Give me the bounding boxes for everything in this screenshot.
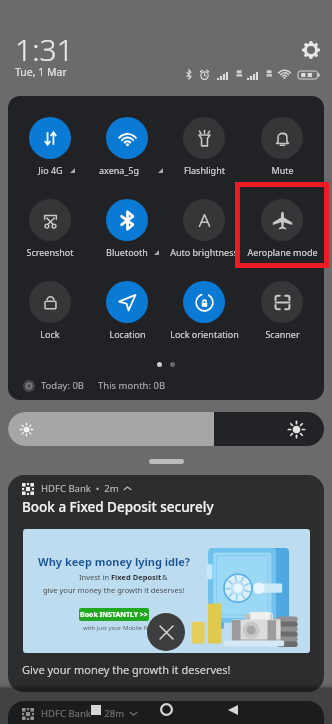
button[interactable]: Bluetooth — [88, 199, 166, 267]
button[interactable]: Scanner — [243, 281, 321, 349]
button[interactable]: Recents — [88, 702, 104, 718]
staticText: Why keep money lying idle? — [38, 554, 191, 569]
button[interactable]: Auto brightness — [165, 199, 243, 267]
staticText: 1:31 — [15, 29, 74, 70]
button[interactable]: Location — [88, 281, 166, 349]
staticText: Lock orientation — [170, 328, 239, 340]
staticText: Book INSTANTLY >> — [80, 610, 148, 620]
staticText: Screenshot — [26, 246, 74, 258]
staticText: Aeroplane mode — [247, 246, 318, 258]
button[interactable]: Aeroplane mode — [243, 199, 321, 267]
staticText: Flashlight — [184, 164, 225, 176]
staticText: Invest in — [79, 572, 111, 582]
staticText: Today: 0B — [41, 379, 85, 392]
button[interactable]: Settings — [299, 38, 323, 62]
staticText: & — [160, 572, 168, 582]
staticText: HDFC Bank • 2m — [41, 482, 119, 495]
button[interactable]: Screenshot — [11, 199, 89, 267]
staticText: Fixed Deposit — [111, 572, 162, 582]
staticText: axena_5g — [99, 164, 139, 176]
staticText: Bluetooth — [106, 246, 148, 258]
staticText: Mute — [271, 164, 294, 176]
button[interactable]: Flashlight — [165, 117, 243, 185]
staticText: with just your Mobile No. — [83, 624, 154, 632]
staticText: This month: 0B — [98, 379, 166, 392]
staticText: Location — [109, 328, 146, 340]
staticText: HDFC Bank • 28m — [41, 707, 125, 720]
staticText: Give your money the growth it deserves! — [22, 662, 231, 677]
button[interactable] — [8, 412, 324, 446]
button[interactable]: Close — [147, 613, 185, 651]
staticText: Lock — [40, 328, 60, 340]
staticText: give your money the growth it deserves! — [43, 585, 185, 595]
button[interactable]: Jio 4G — [11, 117, 89, 185]
button[interactable]: Book INSTANTLY >> — [79, 608, 149, 621]
button[interactable]: Home — [157, 700, 175, 718]
staticText: Tue, 1 Mar — [15, 65, 67, 79]
staticText: Scanner — [265, 328, 300, 340]
button[interactable]: Lock — [11, 281, 89, 349]
button[interactable]: axena_5g — [88, 117, 166, 185]
staticText: Jio 4G — [38, 164, 63, 176]
staticText: Auto brightness — [170, 246, 238, 258]
button[interactable]: Mute — [243, 117, 321, 185]
staticText: Book a Fixed Deposit securely — [22, 498, 214, 516]
button[interactable]: Back — [225, 702, 241, 718]
button[interactable]: Lock orientation — [165, 281, 243, 349]
